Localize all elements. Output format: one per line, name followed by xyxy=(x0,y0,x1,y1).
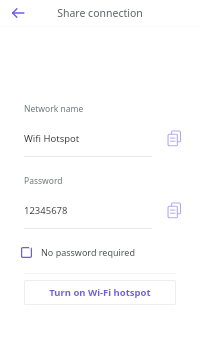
staticText: Password xyxy=(24,175,63,187)
staticText: Turn on Wi-Fi hotspot xyxy=(49,286,151,299)
staticText: No password required xyxy=(41,246,135,258)
button[interactable]: Copy xyxy=(162,198,186,222)
staticText: 12345678 xyxy=(24,204,68,217)
button[interactable]: Copy xyxy=(162,126,186,150)
button[interactable]: Back xyxy=(5,0,31,26)
button[interactable]: Turn on Wi-Fi hotspot xyxy=(24,280,176,305)
staticText: Wifi Hotspot xyxy=(24,132,80,145)
staticText: Share connection xyxy=(57,6,143,20)
button[interactable]: No password required xyxy=(0,241,200,263)
staticText: Network name xyxy=(24,103,84,115)
